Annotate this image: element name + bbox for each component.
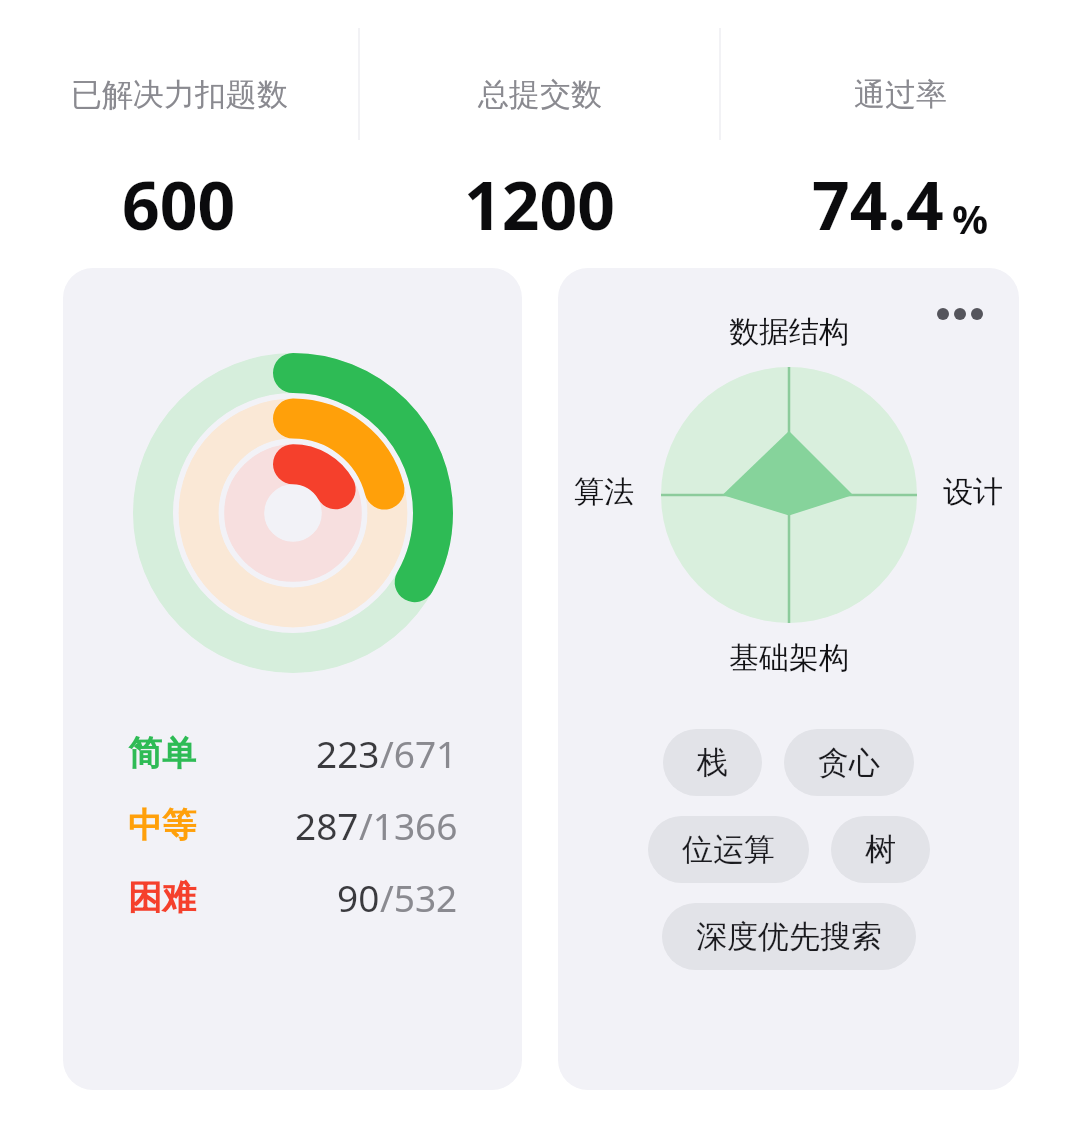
staticText: 总提交数 [478,75,602,114]
staticText: 简单 [128,732,196,775]
staticText: /532 [380,872,458,922]
button[interactable]: 树 [831,816,930,883]
button[interactable]: 位运算 [648,816,809,883]
staticText: 600 [122,159,236,249]
staticText: 287 [295,800,359,850]
button[interactable]: More options [933,296,987,332]
staticText: 设计 [943,473,1003,511]
staticText: 已解决力扣题数 [71,75,288,114]
staticText: 基础架构 [729,639,849,677]
button[interactable]: 总提交数 [360,0,719,249]
staticText: /671 [380,728,458,778]
staticText: /1366 [359,800,458,850]
button[interactable]: More options [558,268,1019,1090]
staticText: 90 [337,872,380,922]
staticText: 74.4 [812,159,944,249]
button[interactable]: 栈 [663,729,762,796]
staticText: 贪心 [818,743,880,782]
staticText: 位运算 [682,830,775,869]
button[interactable]: 中等 [128,800,458,850]
button[interactable]: 通过率 [721,0,1080,249]
staticText: 困难 [128,876,196,919]
staticText: 中等 [128,804,196,847]
button[interactable]: 简单 [63,268,522,1090]
button[interactable]: 困难 [128,872,458,922]
staticText: 算法 [574,473,634,511]
staticText: 树 [865,830,896,869]
staticText: 通过率 [854,75,947,114]
staticText: 栈 [697,743,728,782]
button[interactable]: 已解决力扣题数 [0,0,358,249]
staticText: 数据结构 [729,313,849,351]
staticText: 1200 [464,159,616,249]
button[interactable]: 简单 [128,728,458,778]
staticText: % [952,191,989,245]
staticText: 223 [316,728,380,778]
button[interactable]: 贪心 [784,729,914,796]
staticText: 深度优先搜索 [696,917,882,956]
button[interactable]: 深度优先搜索 [662,903,916,970]
